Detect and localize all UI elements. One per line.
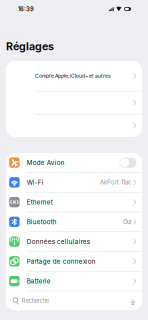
staticText: Bluetooth — [27, 218, 57, 226]
staticText: Données cellulaires — [27, 238, 90, 245]
staticText: Mode Avion — [27, 159, 65, 166]
staticText: AirPort 11ac — [100, 179, 131, 186]
staticText: Ethernet — [27, 198, 53, 206]
button[interactable]: Partage de connexion — [6, 252, 142, 271]
staticText: Oui — [123, 218, 131, 225]
button[interactable]: Bluetooth — [6, 212, 142, 231]
staticText: Partage de connexion — [27, 258, 96, 265]
button[interactable]: Recherche — [7, 293, 141, 309]
button[interactable]: Compte Apple, iCloud+ et autres — [6, 61, 142, 91]
staticText: Recherche — [22, 298, 49, 304]
button[interactable]: Ethernet — [6, 192, 142, 212]
staticText: Général — [27, 297, 52, 305]
staticText: Compte Apple, iCloud+ et autres — [35, 73, 111, 79]
staticText: Batterie — [27, 277, 51, 285]
staticText: Wi-Fi — [27, 179, 44, 186]
button[interactable]: Batterie — [6, 271, 142, 291]
button[interactable]: Abonnements — [6, 114, 142, 137]
staticText: Réglages — [6, 40, 54, 53]
button[interactable]: Données cellulaires — [6, 232, 142, 251]
button[interactable]: Général — [6, 291, 142, 310]
staticText: 16:39 — [18, 5, 34, 13]
button[interactable]: Mode Avion — [6, 153, 142, 172]
button[interactable]: Wi-Fi — [6, 173, 142, 192]
